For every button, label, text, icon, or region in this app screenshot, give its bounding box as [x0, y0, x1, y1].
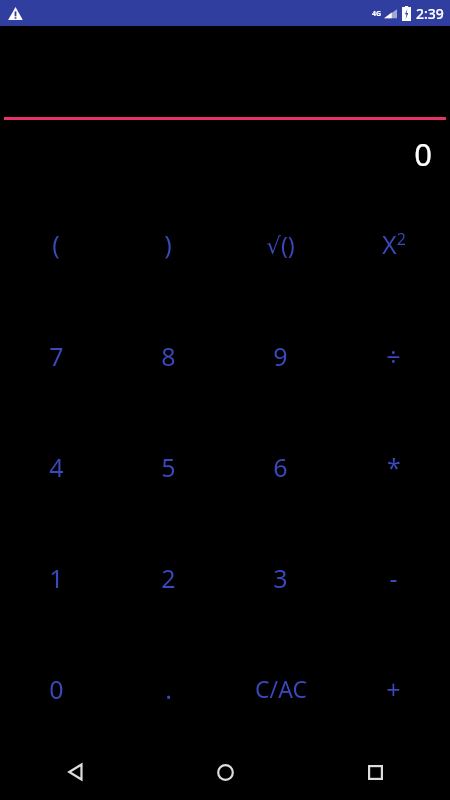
staticText: 0 — [414, 133, 432, 175]
button[interactable]: 0 — [0, 633, 112, 744]
staticText: 7 — [49, 339, 64, 373]
staticText: * — [387, 450, 401, 484]
button[interactable]: ( — [0, 188, 112, 300]
button[interactable]: 2 — [112, 522, 224, 633]
staticText: 3 — [273, 561, 288, 595]
staticText: 4G — [372, 9, 382, 19]
staticText: + — [386, 672, 401, 706]
button[interactable]: - — [337, 522, 450, 633]
staticText: ÷ — [386, 339, 401, 373]
button[interactable]: 6 — [224, 411, 337, 522]
staticText: ) — [164, 227, 172, 261]
button[interactable]: * — [337, 411, 450, 522]
staticText: 0 — [49, 672, 64, 706]
staticText: 2:39 — [416, 4, 444, 23]
staticText: . — [165, 672, 172, 706]
staticText: 8 — [161, 339, 176, 373]
button[interactable]: ) — [112, 188, 224, 300]
button[interactable]: . — [112, 633, 224, 744]
button[interactable]: C/AC — [224, 633, 337, 744]
button[interactable]: 5 — [112, 411, 224, 522]
staticText: ( — [52, 227, 60, 261]
staticText: - — [389, 561, 398, 595]
button[interactable]: Home — [150, 744, 300, 800]
staticText: 1 — [49, 561, 64, 595]
staticText: 2 — [161, 561, 176, 595]
button[interactable]: Recent apps — [300, 744, 450, 800]
staticText: C/AC — [255, 673, 307, 704]
button[interactable]: 7 — [0, 300, 112, 411]
button[interactable]: + — [337, 633, 450, 744]
button[interactable]: 3 — [224, 522, 337, 633]
button[interactable]: 8 — [112, 300, 224, 411]
button[interactable]: 1 — [0, 522, 112, 633]
button[interactable]: ÷ — [337, 300, 450, 411]
staticText: 9 — [273, 339, 288, 373]
button[interactable]: X2 — [337, 188, 450, 300]
button[interactable]: Back — [0, 744, 150, 800]
staticText: 6 — [273, 450, 288, 484]
button[interactable]: 9 — [224, 300, 337, 411]
button[interactable]: 4 — [0, 411, 112, 522]
staticText: 4 — [49, 450, 64, 484]
button[interactable]: √() — [224, 188, 337, 300]
staticText: X2 — [382, 227, 406, 261]
staticText: 5 — [161, 450, 176, 484]
staticText: √() — [266, 229, 295, 260]
